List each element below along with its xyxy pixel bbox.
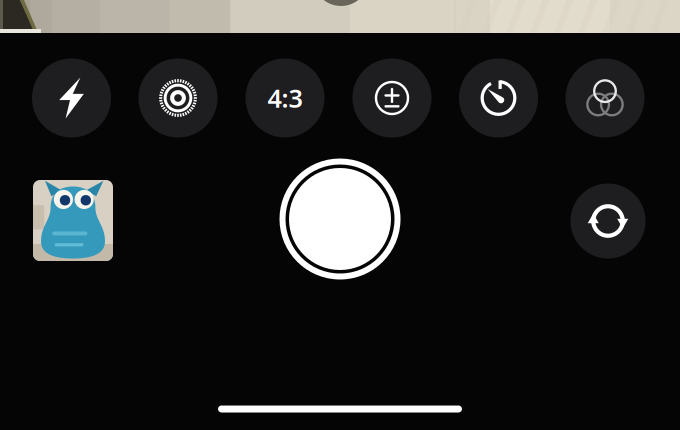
button[interactable]: Flash — [32, 58, 111, 137]
button[interactable]: Timer — [459, 58, 538, 137]
button[interactable]: Take photo — [279, 158, 400, 279]
button[interactable]: Switch camera — [570, 183, 645, 258]
button[interactable]: Exposure — [352, 58, 431, 137]
staticText: 4:3 — [267, 81, 302, 115]
button[interactable]: Live Photo — [138, 58, 217, 137]
button[interactable]: Photo library — [33, 180, 113, 261]
button[interactable]: Aspect ratio 4 to 3 — [245, 58, 324, 137]
button[interactable]: Filters — [565, 58, 644, 137]
